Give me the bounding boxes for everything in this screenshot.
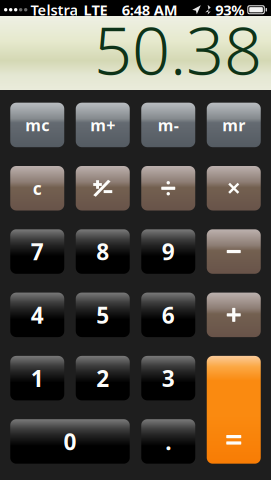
button[interactable]: 8 — [76, 229, 130, 274]
button[interactable]: 3 — [141, 356, 195, 400]
staticText: 6:48 AM — [122, 0, 178, 19]
staticText: . — [165, 426, 171, 456]
button[interactable]: 7 — [10, 229, 64, 274]
staticText: mc — [25, 114, 49, 135]
staticText: m+ — [90, 114, 115, 135]
staticText: 1 — [31, 363, 44, 393]
staticText: 7 — [31, 236, 44, 267]
button[interactable]: 1 — [10, 356, 64, 400]
staticText: 50.38 — [94, 5, 262, 93]
staticText: 5 — [96, 300, 109, 330]
staticText: 3 — [162, 363, 175, 393]
button[interactable]: mc — [10, 103, 64, 147]
button[interactable]: 5 — [76, 293, 130, 337]
button[interactable]: Plus minus — [76, 166, 130, 210]
staticText: 0 — [63, 426, 76, 456]
staticText: 8 — [96, 236, 109, 267]
button[interactable]: 0 — [10, 419, 130, 464]
staticText: 4 — [31, 300, 44, 330]
button[interactable]: Plus — [207, 293, 261, 337]
button[interactable]: Equals — [207, 356, 261, 464]
button[interactable]: 6 — [141, 293, 195, 337]
button[interactable]: c — [10, 166, 64, 210]
button[interactable]: 4 — [10, 293, 64, 337]
button[interactable]: Divide — [141, 166, 195, 210]
button[interactable]: Minus — [207, 229, 261, 274]
staticText: LTE — [83, 0, 107, 19]
button[interactable]: 9 — [141, 229, 195, 274]
staticText: 93% — [215, 0, 244, 19]
staticText: m- — [158, 114, 179, 135]
button[interactable]: 2 — [76, 356, 130, 400]
button[interactable]: mr — [207, 103, 261, 147]
staticText: mr — [222, 114, 245, 135]
staticText: Telstra — [30, 0, 78, 19]
button[interactable]: m+ — [76, 103, 130, 147]
button[interactable]: Multiply — [207, 166, 261, 210]
button[interactable]: . — [141, 419, 195, 464]
button[interactable]: m- — [141, 103, 195, 147]
staticText: c — [33, 177, 42, 200]
staticText: 6 — [162, 300, 175, 330]
staticText: 9 — [162, 236, 175, 267]
staticText: 2 — [96, 363, 109, 393]
